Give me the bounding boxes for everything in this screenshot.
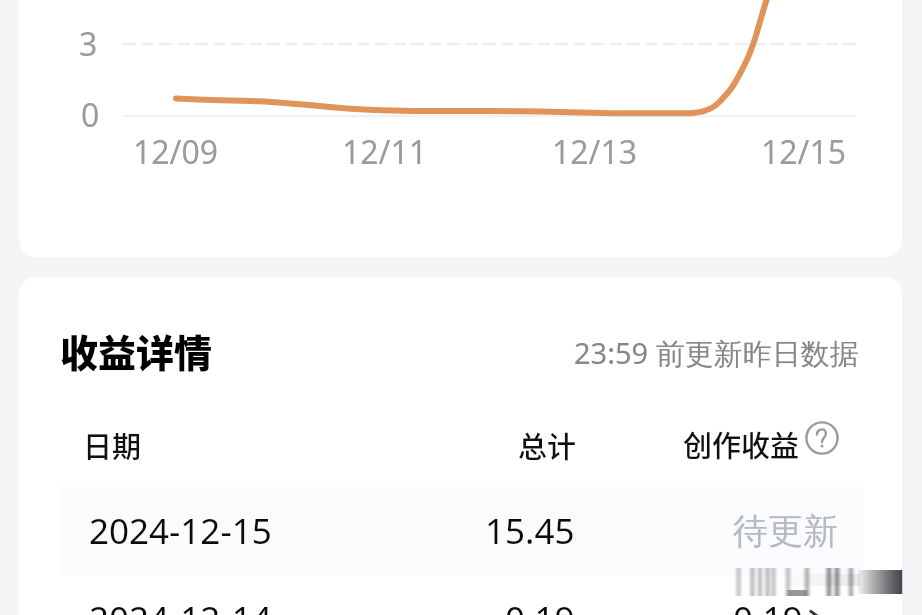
- staticText: 2024-12-14: [89, 595, 272, 615]
- staticText: 15.45: [485, 507, 575, 555]
- staticText: 0: [81, 93, 100, 137]
- staticText: 12/11: [342, 130, 428, 174]
- staticText: 创作收益: [683, 423, 800, 465]
- button[interactable]: 2024-12-15: [60, 487, 863, 575]
- staticText: 日期: [83, 424, 142, 466]
- staticText: 待更新: [733, 509, 838, 553]
- staticText: 12/09: [133, 130, 219, 174]
- staticText: 0.19: [733, 595, 803, 615]
- staticText: 12/15: [761, 130, 847, 174]
- staticText: 总计: [518, 424, 577, 466]
- staticText: 2024-12-15: [89, 507, 272, 555]
- other: 查看明细: [805, 608, 827, 615]
- staticText: 3: [79, 22, 98, 66]
- button[interactable]: 创作收益说明: [683, 417, 839, 459]
- staticText: 收益详情: [60, 323, 213, 378]
- staticText: 0.19: [505, 595, 575, 615]
- staticText: 12/13: [552, 130, 638, 174]
- staticText: 23:59 前更新昨日数据: [574, 333, 859, 373]
- button[interactable]: 2024-12-14: [60, 575, 863, 615]
